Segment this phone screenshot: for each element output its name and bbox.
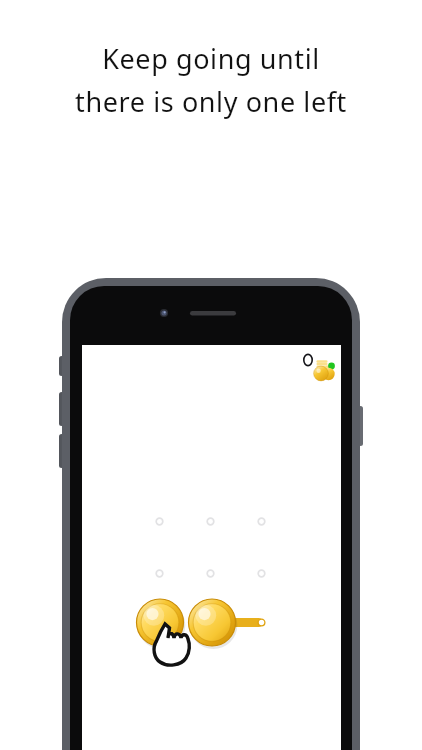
button[interactable]: Game preview on phone — [0, 0, 422, 750]
staticText: Keep going until — [102, 40, 320, 77]
staticText: there is only one left — [75, 83, 347, 120]
